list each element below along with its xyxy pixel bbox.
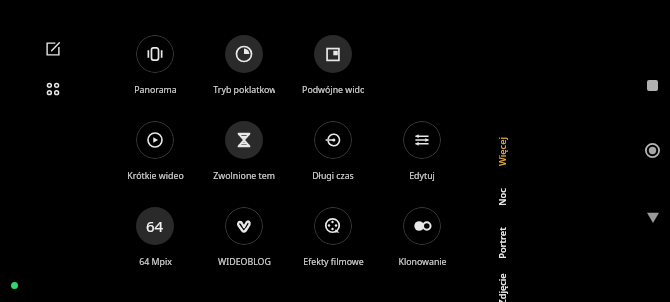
staticText: Więcej (496, 137, 509, 166)
staticText: Zdjęcie (496, 273, 509, 302)
button[interactable]: Długi czas (298, 121, 368, 182)
button[interactable]: Klonowanie (387, 207, 457, 268)
staticText: Podwójne widok (302, 84, 364, 96)
staticText: 64 Mpix (139, 256, 172, 268)
button[interactable]: Edytuj (387, 121, 457, 182)
button[interactable]: Edit modes (41, 37, 64, 60)
button[interactable]: Zdjęcie (491, 267, 513, 302)
button[interactable]: Portret (491, 221, 513, 265)
staticText: Noc (496, 188, 509, 206)
staticText: Długi czas (312, 170, 354, 182)
button[interactable]: Panorama (120, 35, 190, 96)
staticText: Portret (496, 227, 509, 259)
staticText: 64 (146, 216, 164, 236)
button[interactable]: Zwolnione tempo (209, 121, 279, 182)
staticText: Panorama (134, 84, 177, 96)
button[interactable]: Switch camera (640, 204, 665, 229)
button[interactable]: Krótkie wideo (120, 121, 190, 182)
button[interactable]: Tryb poklatkowy (209, 35, 279, 96)
button[interactable]: Więcej (491, 130, 513, 174)
button[interactable]: Shutter (640, 138, 665, 163)
button[interactable]: 64 (120, 207, 190, 268)
button[interactable]: Grid view (41, 77, 64, 100)
button[interactable]: WIDEOBLOG (209, 207, 279, 268)
staticText: Krótkie wideo (127, 170, 184, 182)
button[interactable]: Gallery (640, 73, 665, 98)
button[interactable]: Podwójne widok (298, 35, 368, 96)
staticText: Edytuj (409, 170, 435, 182)
staticText: Efekty filmowe (303, 256, 364, 268)
staticText: Klonowanie (398, 256, 447, 268)
button[interactable]: Efekty filmowe (298, 207, 368, 268)
staticText: WIDEOBLOG (218, 256, 271, 268)
staticText: Tryb poklatkowy (213, 84, 275, 96)
button[interactable]: Noc (491, 175, 513, 219)
staticText: Zwolnione tempo (213, 170, 275, 182)
